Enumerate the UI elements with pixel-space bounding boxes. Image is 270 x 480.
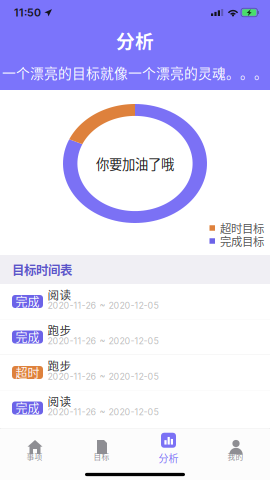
staticText: 完成	[15, 328, 39, 346]
staticText: 2020-11-26 ~ 2020-12-05	[47, 371, 158, 382]
staticText: 完成	[15, 399, 39, 417]
button[interactable]: 完成	[0, 390, 270, 425]
button[interactable]: 我的	[202, 431, 269, 466]
staticText: 阅读	[47, 393, 71, 409]
staticText: 一个漂亮的目标就像一个漂亮的灵魂。。。	[2, 63, 268, 82]
button[interactable]: 目标	[68, 431, 135, 466]
staticText: 目标	[93, 451, 109, 462]
button[interactable]: 超时	[0, 355, 270, 390]
staticText: 目标时间表	[12, 260, 72, 278]
staticText: 2020-11-26 ~ 2020-12-05	[47, 300, 158, 311]
staticText: 阅读	[47, 286, 71, 303]
staticText: 分析	[116, 26, 154, 53]
staticText: 我的	[227, 451, 243, 462]
staticText: 2020-11-26 ~ 2020-12-05	[47, 407, 158, 417]
staticText: 完成	[15, 293, 39, 310]
staticText: 跑步	[47, 322, 71, 338]
button[interactable]: 完成	[0, 284, 270, 319]
staticText: 超时	[15, 364, 39, 381]
staticText: 11:50	[14, 6, 41, 19]
staticText: 分析	[158, 451, 178, 465]
staticText: 完成目标	[220, 233, 264, 249]
button[interactable]: 事项	[1, 431, 68, 466]
staticText: 跑步	[47, 357, 71, 374]
button[interactable]: 分析	[135, 428, 202, 468]
button[interactable]: 完成	[0, 319, 270, 354]
staticText: 事项	[26, 451, 42, 462]
staticText: 超时目标	[220, 220, 264, 236]
staticText: 你要加油了哦	[96, 154, 174, 173]
staticText: 2020-11-26 ~ 2020-12-05	[47, 336, 158, 346]
